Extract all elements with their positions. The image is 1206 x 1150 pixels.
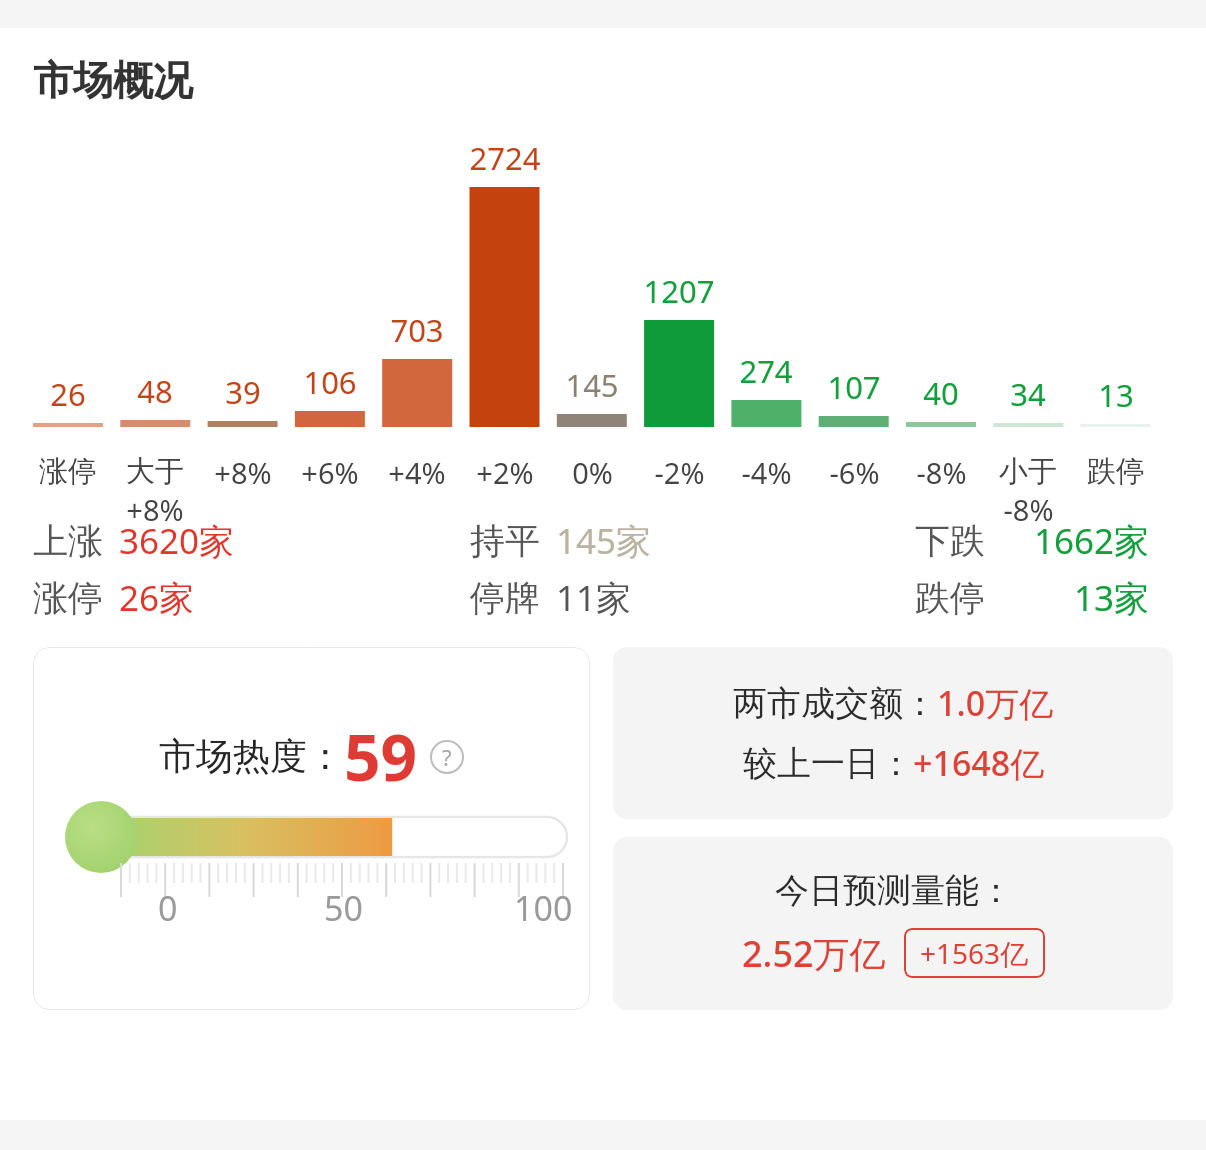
staticText: 145家 bbox=[556, 517, 652, 565]
staticText: 100 bbox=[514, 885, 573, 931]
staticText: 今日预测量能： bbox=[775, 869, 1013, 912]
staticText: 较上一日： bbox=[743, 742, 913, 785]
staticText: 13家 bbox=[1074, 574, 1150, 622]
staticText: 34 bbox=[981, 373, 1075, 415]
staticText: 停牌 bbox=[470, 576, 540, 620]
staticText: 50 bbox=[324, 885, 363, 931]
staticText: 大于 bbox=[126, 453, 184, 490]
staticText: 11家 bbox=[556, 574, 632, 622]
staticText: 市场概况 bbox=[33, 55, 193, 105]
staticText: -2% bbox=[654, 453, 705, 492]
button[interactable]: 停牌 bbox=[470, 574, 632, 622]
staticText: 2.52万亿 bbox=[742, 929, 886, 978]
staticText: 39 bbox=[196, 371, 290, 413]
staticText: 274 bbox=[719, 350, 813, 392]
staticText: +8% bbox=[214, 453, 272, 492]
button[interactable]: 持平 bbox=[470, 517, 652, 565]
staticText: 涨停 bbox=[33, 576, 103, 620]
button[interactable]: 帮助说明 bbox=[430, 740, 464, 774]
staticText: +2% bbox=[476, 453, 534, 492]
button[interactable]: 上涨 bbox=[33, 517, 235, 565]
staticText: +8% bbox=[126, 490, 184, 529]
staticText: 145 bbox=[545, 364, 639, 406]
staticText: +1648亿 bbox=[913, 740, 1045, 786]
staticText: -8% bbox=[1003, 490, 1054, 529]
staticText: 40 bbox=[894, 372, 988, 414]
staticText: 上涨 bbox=[33, 519, 103, 563]
button[interactable]: 跌停 bbox=[915, 574, 1150, 622]
staticText: -4% bbox=[741, 453, 792, 492]
staticText: +1563亿 bbox=[920, 934, 1029, 972]
staticText: 48 bbox=[108, 370, 202, 412]
staticText: 跌停 bbox=[915, 576, 985, 620]
staticText: 26家 bbox=[119, 574, 195, 622]
staticText: +4% bbox=[388, 453, 446, 492]
staticText: 59 bbox=[344, 713, 418, 800]
staticText: -6% bbox=[829, 453, 880, 492]
staticText: 持平 bbox=[470, 519, 540, 563]
staticText: 市场热度： bbox=[159, 733, 344, 780]
staticText: 涨停 bbox=[39, 453, 97, 490]
button[interactable]: 涨停 bbox=[33, 574, 195, 622]
button[interactable]: 两市成交额： bbox=[613, 647, 1173, 819]
staticText: 0 bbox=[158, 885, 178, 931]
staticText: 1.0万亿 bbox=[937, 680, 1054, 726]
staticText: +6% bbox=[301, 453, 359, 492]
staticText: 26 bbox=[21, 373, 115, 415]
staticText: 下跌 bbox=[915, 519, 985, 563]
button[interactable]: 市场热度： bbox=[33, 647, 590, 1010]
staticText: -8% bbox=[916, 453, 967, 492]
staticText: 1662家 bbox=[1034, 517, 1150, 565]
staticText: 0% bbox=[572, 453, 613, 492]
staticText: 1207 bbox=[632, 270, 726, 312]
staticText: 2724 bbox=[458, 137, 552, 179]
button[interactable]: 下跌 bbox=[915, 517, 1150, 565]
staticText: 13 bbox=[1069, 374, 1163, 416]
button[interactable]: 今日预测量能： bbox=[613, 837, 1173, 1010]
staticText: 小于 bbox=[999, 453, 1057, 490]
staticText: 106 bbox=[283, 361, 377, 403]
staticText: 3620家 bbox=[119, 517, 235, 565]
staticText: 两市成交额： bbox=[733, 682, 937, 725]
staticText: 跌停 bbox=[1087, 453, 1145, 490]
staticText: ? bbox=[442, 742, 452, 772]
staticText: 107 bbox=[807, 366, 901, 408]
staticText: 703 bbox=[370, 309, 464, 351]
